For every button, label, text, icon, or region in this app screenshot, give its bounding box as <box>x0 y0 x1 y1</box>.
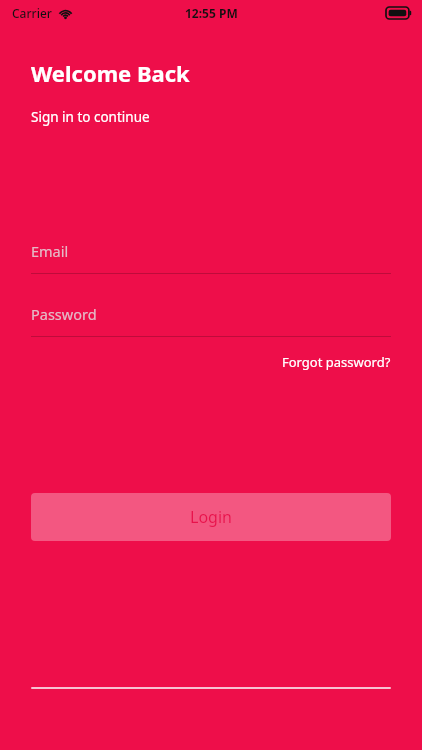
staticText: 12:55 PM <box>185 5 238 21</box>
staticText: Carrier <box>12 5 52 21</box>
button[interactable]: Forgot password? <box>282 351 391 373</box>
staticText: Login <box>190 506 232 528</box>
button[interactable]: Email <box>31 239 391 274</box>
button[interactable]: Login <box>31 493 391 541</box>
staticText: Sign in to continue <box>31 108 150 126</box>
staticText: Email <box>31 241 69 261</box>
staticText: Password <box>31 304 97 324</box>
staticText: Welcome Back <box>31 58 190 88</box>
staticText: Forgot password? <box>282 353 391 371</box>
button[interactable]: Password <box>31 302 391 337</box>
